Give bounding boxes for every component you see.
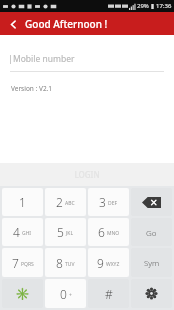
button[interactable]: 5 [45, 218, 86, 246]
staticText: 8 [56, 255, 63, 271]
staticText: ABC [65, 200, 75, 207]
button[interactable]: Sym [131, 248, 172, 277]
button[interactable]: Keyboard settings [131, 279, 172, 308]
staticText: # [105, 286, 113, 302]
staticText: PQRS [21, 261, 34, 268]
staticText: Sym [144, 257, 160, 268]
button[interactable]: 4 [2, 218, 43, 246]
staticText: 0 [60, 286, 67, 302]
staticText: 3 [99, 194, 106, 210]
button[interactable]: Go [131, 218, 172, 246]
button[interactable]: 7 [2, 248, 43, 277]
staticText: Version : V2.1 [11, 84, 53, 93]
staticText: 7 [12, 255, 19, 271]
staticText: GHI [22, 230, 32, 237]
button[interactable]: 9 [88, 248, 129, 277]
staticText: LOGIN [74, 169, 100, 180]
staticText: ✳ [15, 287, 30, 301]
staticText: Good Afternoon ! [25, 17, 108, 31]
staticText: + [69, 292, 72, 299]
button[interactable]: 3 [88, 188, 129, 216]
button[interactable]: 0 [45, 279, 86, 308]
staticText: 5 [57, 224, 64, 240]
button[interactable]: ✳ [2, 279, 43, 308]
staticText: TUV [65, 261, 75, 268]
staticText: 2 [56, 194, 63, 210]
staticText: Mobile number [13, 53, 75, 65]
button[interactable]: 1 [2, 188, 43, 216]
staticText: 29% [137, 2, 149, 10]
staticText: 1 [19, 194, 26, 210]
staticText: Go [146, 227, 157, 238]
button[interactable]: # [88, 279, 129, 308]
staticText: 6 [98, 224, 105, 240]
staticText: 9 [97, 255, 104, 271]
staticText: 17:36 [156, 2, 172, 10]
button[interactable]: 2 [45, 188, 86, 216]
staticText: 4 [13, 224, 20, 240]
button[interactable]: Back [4, 15, 22, 33]
staticText: MNO [107, 230, 120, 237]
staticText: WXYZ [106, 261, 120, 268]
staticText: DEF [108, 200, 118, 207]
button[interactable]: Delete [131, 188, 172, 216]
button[interactable]: 8 [45, 248, 86, 277]
staticText: JKL [66, 230, 74, 237]
button[interactable]: 6 [88, 218, 129, 246]
